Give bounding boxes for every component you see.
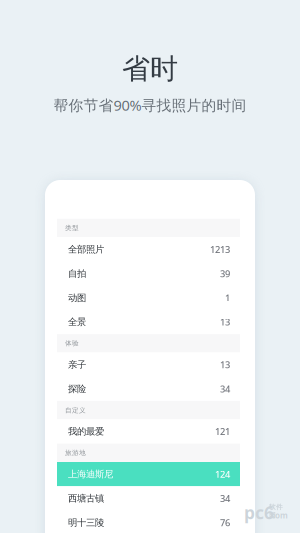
button[interactable]: 自拍	[45, 261, 255, 286]
staticText: 体验	[65, 339, 79, 347]
button[interactable]: 亲子	[45, 352, 255, 377]
staticText: 帮你节省90%寻找照片的时间	[53, 95, 246, 115]
staticText: pc6	[244, 501, 274, 524]
staticText: 124	[215, 468, 230, 480]
staticText: 34	[220, 383, 230, 395]
button[interactable]: 上海迪斯尼	[45, 462, 255, 486]
staticText: 76	[220, 516, 230, 529]
staticText: 1	[225, 292, 230, 304]
staticText: 省时	[122, 52, 178, 86]
staticText: 全部照片	[68, 244, 104, 255]
staticText: 全景	[68, 316, 86, 328]
button[interactable]: 全景	[45, 310, 255, 334]
button[interactable]: 动图	[45, 286, 255, 310]
staticText: 上海迪斯尼	[68, 468, 113, 480]
staticText: .com	[269, 510, 288, 521]
staticText: 我的最爱	[68, 426, 104, 437]
staticText: 13	[220, 316, 230, 328]
staticText: 西塘古镇	[68, 493, 104, 504]
staticText: 34	[220, 492, 230, 505]
staticText: 自拍	[68, 268, 86, 279]
staticText: 软件园	[269, 503, 283, 519]
staticText: 探险	[68, 383, 86, 395]
staticText: 动图	[68, 292, 86, 303]
staticText: 自定义	[65, 406, 86, 414]
staticText: 亲子	[68, 359, 86, 370]
staticText: 明十三陵	[68, 517, 104, 528]
button[interactable]: 西塘古镇	[45, 486, 255, 510]
staticText: 39	[220, 267, 230, 280]
staticText: 13	[220, 358, 230, 371]
staticText: 旅游地	[65, 449, 86, 457]
staticText: 121	[215, 425, 230, 438]
button[interactable]: 明十三陵	[45, 510, 255, 533]
button[interactable]: 我的最爱	[45, 419, 255, 444]
button[interactable]: 探险	[45, 377, 255, 401]
staticText: 类型	[65, 224, 79, 232]
staticText: 1213	[210, 243, 230, 255]
button[interactable]: 全部照片	[45, 237, 255, 261]
